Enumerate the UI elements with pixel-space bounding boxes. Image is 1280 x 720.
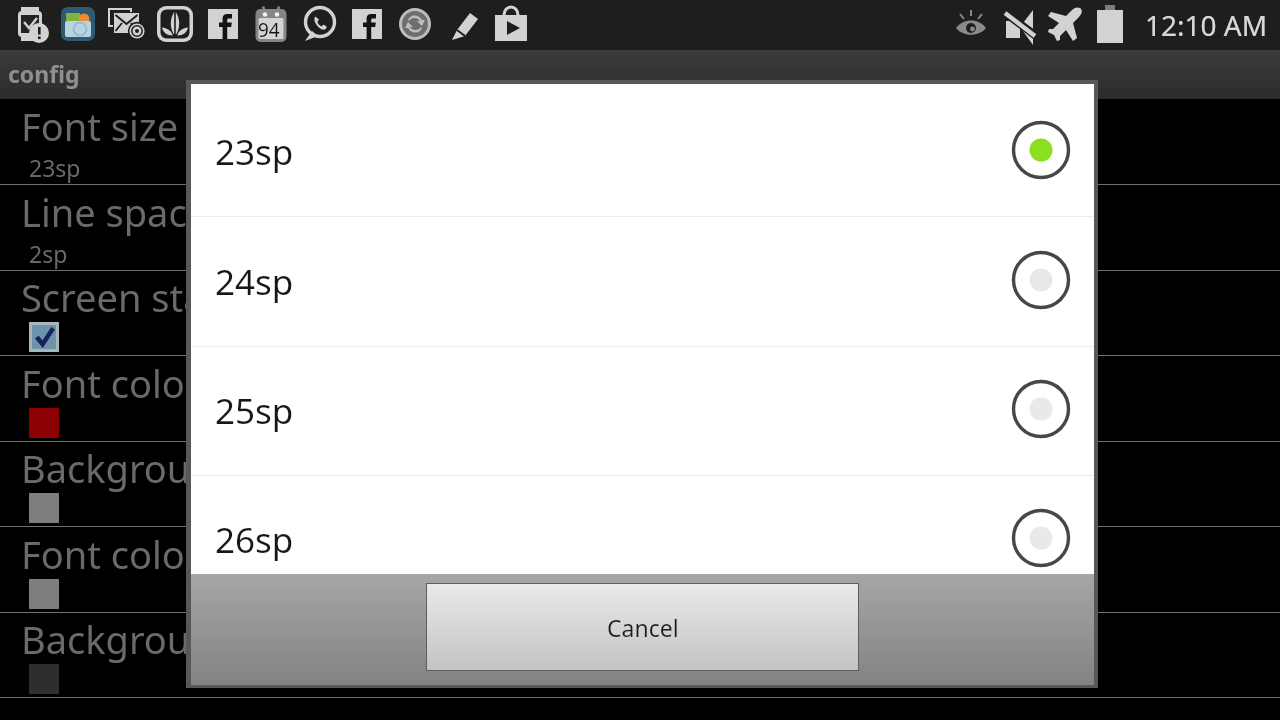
staticText: 25sp bbox=[215, 387, 294, 435]
button[interactable]: config bbox=[0, 50, 1280, 99]
button[interactable]: Font size bbox=[0, 99, 1280, 185]
button[interactable]: Background colour (night) bbox=[0, 612, 1280, 698]
staticText: 12:10 AM bbox=[1145, 6, 1268, 44]
staticText: Font size bbox=[21, 100, 179, 152]
staticText: Background colour (night) bbox=[21, 613, 487, 665]
button[interactable]: Cancel bbox=[427, 584, 858, 670]
staticText: 24sp bbox=[215, 258, 294, 306]
staticText: 23sp bbox=[215, 128, 294, 176]
button[interactable]: Line spacing bbox=[0, 185, 1280, 271]
button[interactable]: 23sp bbox=[191, 85, 1094, 214]
staticText: 94 bbox=[258, 17, 280, 43]
staticText: 23sp bbox=[29, 152, 81, 183]
staticText: config bbox=[8, 58, 80, 89]
staticText: Cancel bbox=[607, 612, 679, 643]
staticText: Font colour (night) bbox=[21, 528, 351, 580]
staticText: Line spacing bbox=[21, 186, 244, 238]
staticText: Font colour (day) bbox=[21, 357, 321, 409]
button[interactable]: 25sp bbox=[191, 344, 1094, 473]
staticText: Background colour (day) bbox=[21, 442, 458, 494]
staticText: Screen stays on bbox=[21, 271, 299, 323]
button[interactable]: Open notification shade bbox=[0, 0, 1280, 50]
staticText: 26sp bbox=[215, 516, 294, 564]
button[interactable]: 26sp bbox=[191, 473, 1094, 574]
button[interactable]: Background colour (day) bbox=[0, 441, 1280, 527]
button[interactable]: Font colour (night) bbox=[0, 527, 1280, 613]
button[interactable]: Screen stays on bbox=[0, 270, 1280, 356]
staticText: 2sp bbox=[29, 238, 68, 269]
button[interactable]: 24sp bbox=[191, 215, 1094, 344]
button[interactable]: Font colour (day) bbox=[0, 356, 1280, 442]
